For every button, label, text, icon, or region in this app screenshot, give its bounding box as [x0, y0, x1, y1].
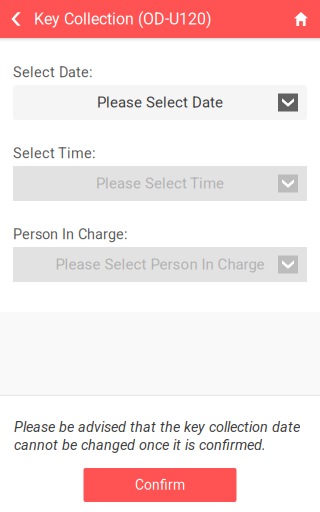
button[interactable]: Confirm	[83, 468, 236, 502]
staticText: cannot be changed once it is confirmed.	[14, 437, 266, 453]
button[interactable]: Please Select Time	[13, 166, 307, 201]
button[interactable]: Back	[0, 0, 26, 38]
staticText: Select Time:	[13, 145, 95, 162]
staticText: Confirm	[135, 477, 185, 493]
button[interactable]: Please Select Date	[13, 85, 307, 120]
staticText: Please Select Time	[96, 175, 224, 192]
button[interactable]: Home	[282, 0, 320, 38]
staticText: Select Date:	[13, 64, 92, 81]
button[interactable]: Please Select Person In Charge	[13, 247, 307, 282]
staticText: Please Select Person In Charge	[55, 256, 264, 273]
staticText: Key Collection (OD-U120)	[34, 10, 212, 28]
staticText: Please Select Date	[97, 94, 223, 111]
staticText: Person In Charge:	[13, 226, 127, 243]
staticText: Please be advised that the key collectio…	[14, 419, 300, 435]
